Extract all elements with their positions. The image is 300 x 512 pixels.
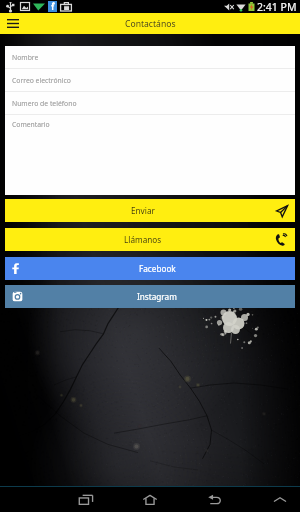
staticText: Nombre <box>12 53 39 62</box>
button[interactable]: Nombre <box>5 46 295 68</box>
other: Instagram <box>12 291 23 302</box>
staticText: Facebook <box>139 263 176 274</box>
button[interactable]: Correo electrónico <box>5 69 295 91</box>
button[interactable]: Hide keyboard <box>264 487 296 512</box>
staticText: Numero de teléfono <box>12 99 77 108</box>
button[interactable]: Enviar <box>5 199 295 222</box>
staticText: Instagram <box>137 291 177 302</box>
staticText: Contactános <box>125 18 176 30</box>
other: Send <box>276 205 288 217</box>
staticText: Correo electrónico <box>12 76 71 85</box>
button[interactable]: Numero de teléfono <box>5 92 295 114</box>
button[interactable]: Llámanos <box>5 228 295 251</box>
button[interactable]: Facebook <box>5 257 295 280</box>
button[interactable]: Open navigation drawer <box>0 13 26 34</box>
button[interactable]: Recent apps <box>70 487 102 512</box>
button[interactable]: Instagram <box>5 285 295 308</box>
other: Facebook <box>12 263 19 274</box>
staticText: Comentario <box>12 120 50 129</box>
staticText: 2:41 PM <box>257 0 297 13</box>
button[interactable]: Home <box>134 487 166 512</box>
button[interactable]: Comentario <box>5 115 295 195</box>
staticText: Enviar <box>131 205 155 216</box>
staticText: Llámanos <box>124 234 162 245</box>
button[interactable]: Back <box>199 487 231 512</box>
other: Call <box>275 233 288 246</box>
